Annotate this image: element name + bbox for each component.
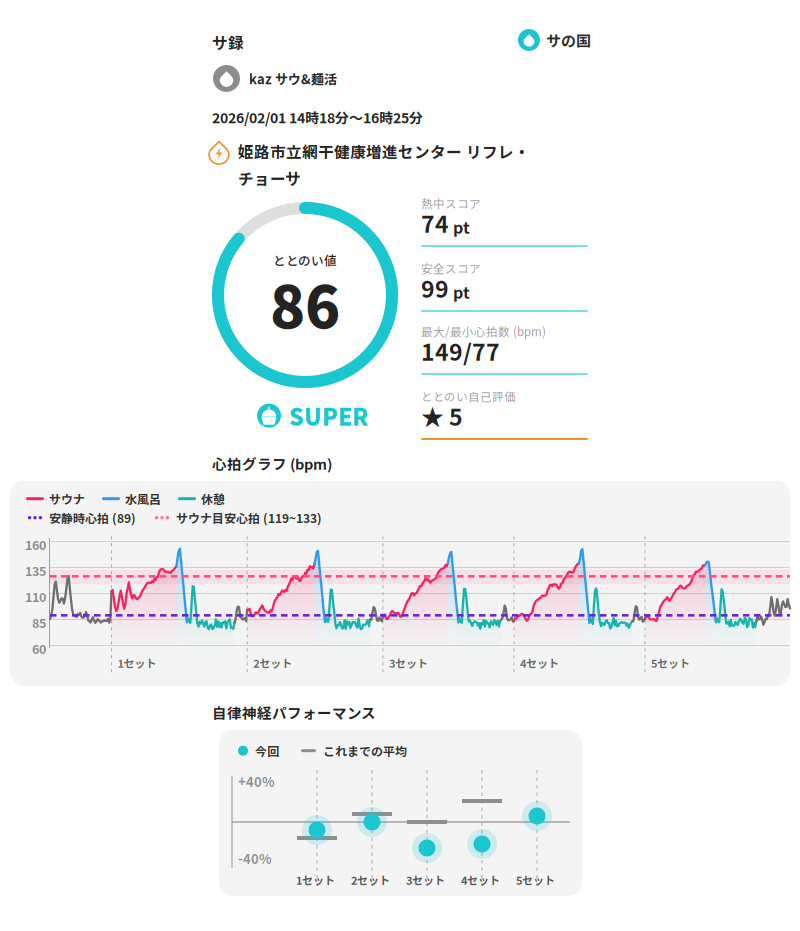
staticText: サウナ目安心拍 (119~133) bbox=[176, 509, 322, 526]
staticText: pt bbox=[453, 215, 470, 238]
staticText: サウナ bbox=[49, 490, 85, 507]
staticText: ととのい自己評価 bbox=[421, 388, 516, 405]
staticText: 姫路市立網干健康増進センター リフレ・ bbox=[238, 140, 530, 163]
button[interactable]: kaz サウ&麺活 bbox=[213, 65, 337, 92]
staticText: 1セット bbox=[296, 872, 335, 888]
staticText: 5セット bbox=[651, 655, 690, 671]
staticText: サの国 bbox=[546, 29, 591, 51]
staticText: 135 bbox=[25, 561, 46, 580]
staticText: 心拍グラフ (bpm) bbox=[212, 453, 332, 474]
staticText: -40% bbox=[238, 849, 272, 868]
staticText: 2026/02/01 14時18分〜16時25分 bbox=[212, 107, 423, 127]
staticText: 2セット bbox=[253, 655, 292, 671]
staticText: ★ 5 bbox=[421, 399, 463, 432]
staticText: 60 bbox=[32, 639, 46, 658]
staticText: これまでの平均 bbox=[323, 742, 407, 759]
staticText: 3セット bbox=[406, 872, 445, 888]
staticText: 4セット bbox=[520, 655, 559, 671]
staticText: 99 bbox=[421, 271, 449, 304]
staticText: 5セット bbox=[516, 872, 555, 888]
staticText: 110 bbox=[25, 587, 46, 606]
staticText: 安全スコア bbox=[421, 260, 481, 277]
staticText: 休憩 bbox=[201, 490, 225, 507]
staticText: サ録 bbox=[212, 31, 244, 53]
staticText: 1セット bbox=[117, 655, 156, 671]
staticText: ととのい値 bbox=[273, 251, 337, 269]
staticText: 86 bbox=[270, 261, 340, 345]
staticText: 自律神経パフォーマンス bbox=[212, 702, 376, 723]
button[interactable]: サの国 bbox=[518, 29, 591, 51]
staticText: 160 bbox=[25, 535, 46, 554]
staticText: 85 bbox=[32, 613, 46, 632]
staticText: pt bbox=[453, 280, 470, 303]
staticText: 安静時心拍 (89) bbox=[49, 509, 136, 526]
staticText: 4セット bbox=[461, 872, 500, 888]
staticText: SUPER bbox=[289, 399, 368, 432]
staticText: kaz サウ&麺活 bbox=[249, 69, 337, 88]
staticText: 水風呂 bbox=[125, 490, 161, 507]
staticText: 今回 bbox=[255, 742, 279, 759]
staticText: 最大/最小心拍数 (bpm) bbox=[421, 323, 546, 340]
staticText: チョーサ bbox=[238, 167, 301, 189]
staticText: +40% bbox=[238, 772, 275, 791]
staticText: 熱中スコア bbox=[421, 195, 481, 212]
staticText: 2セット bbox=[351, 872, 390, 888]
staticText: 149/77 bbox=[421, 334, 500, 367]
staticText: 3セット bbox=[389, 655, 428, 671]
staticText: 74 bbox=[421, 206, 449, 239]
